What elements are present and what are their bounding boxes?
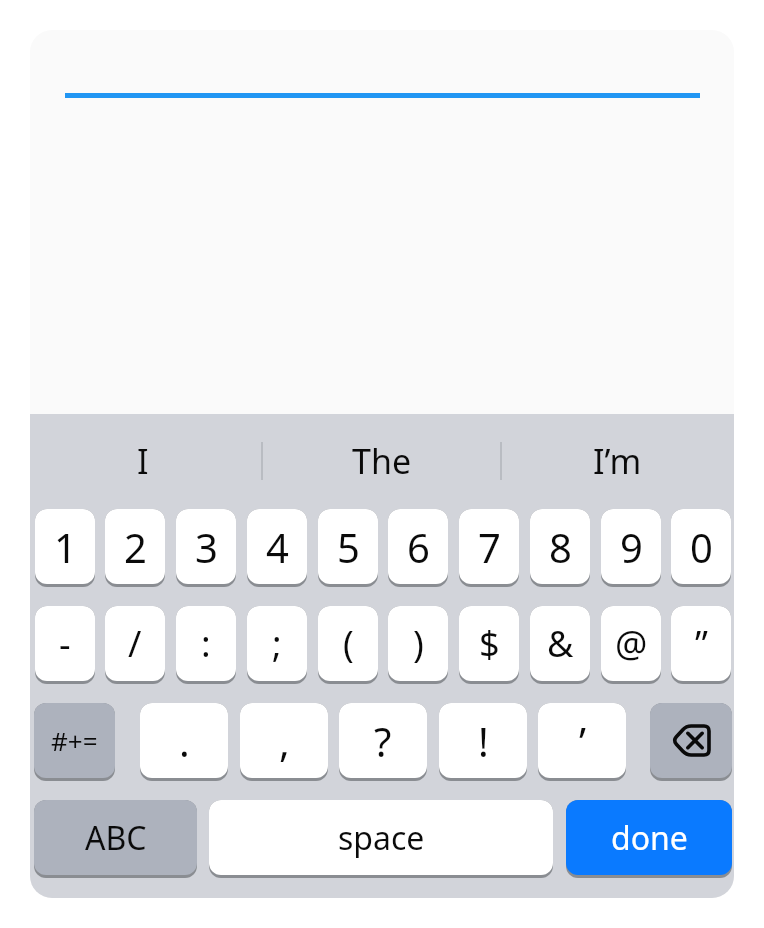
staticText: 5 xyxy=(337,520,360,574)
staticText: $ xyxy=(479,619,500,668)
staticText: space xyxy=(338,816,425,860)
staticText: 6 xyxy=(407,520,430,574)
staticText: #+= xyxy=(51,723,98,758)
staticText: / xyxy=(128,619,142,668)
staticText: ; xyxy=(272,619,282,668)
staticText: 2 xyxy=(124,520,147,574)
staticText: 1 xyxy=(54,520,77,574)
staticText: ” xyxy=(695,619,708,668)
staticText: ! xyxy=(478,714,489,768)
staticText: . xyxy=(179,714,190,768)
staticText: ’ xyxy=(579,714,586,768)
staticText: The xyxy=(352,438,412,484)
staticText: 4 xyxy=(266,520,289,574)
staticText: done xyxy=(611,816,688,860)
staticText: ( xyxy=(343,619,354,668)
staticText: 3 xyxy=(195,520,218,574)
staticText: ? xyxy=(374,714,392,768)
staticText: - xyxy=(59,619,71,668)
staticText: @ xyxy=(615,619,648,668)
staticText: ABC xyxy=(85,816,147,860)
staticText: 7 xyxy=(478,520,501,574)
staticText: 0 xyxy=(690,520,713,574)
staticText: I xyxy=(137,438,149,484)
staticText: I’m xyxy=(593,438,642,484)
staticText: : xyxy=(201,619,211,668)
staticText: 8 xyxy=(549,520,572,574)
staticText: ) xyxy=(413,619,424,668)
staticText: 9 xyxy=(620,520,643,574)
staticText: , xyxy=(279,714,290,768)
staticText: & xyxy=(547,619,574,668)
